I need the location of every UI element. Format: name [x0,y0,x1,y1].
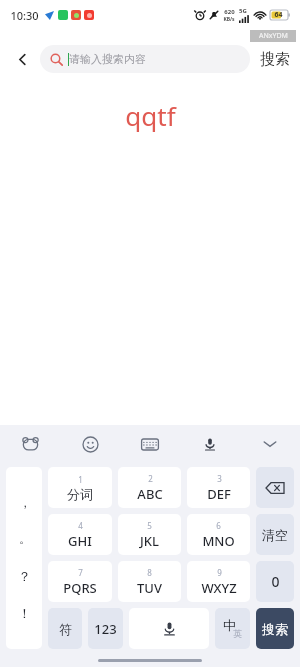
button[interactable]: 123 [88,608,123,649]
staticText: 搜索 [260,50,290,69]
button[interactable]: 搜索 [256,608,294,649]
staticText: GHI [68,532,92,550]
staticText: ANxYDM [259,31,288,41]
staticText: DEF [207,485,231,503]
button[interactable]: Voice input [129,608,209,649]
button[interactable]: Back [8,45,36,73]
staticText: ABC [137,485,163,503]
staticText: 请输入搜索内容 [69,52,146,66]
staticText: JKL [140,532,159,550]
button[interactable]: 9 [187,561,250,602]
staticText: ， [19,495,31,510]
staticText: KB/s [223,16,235,23]
button[interactable]: 2 [118,467,181,508]
button[interactable]: ， [6,467,42,649]
staticText: WXYZ [201,579,237,597]
button[interactable]: 8 [118,561,181,602]
staticText: ！ [18,605,31,621]
staticText: 清空 [262,527,288,543]
button[interactable]: 清空 [256,514,294,555]
button[interactable]: Input method [0,425,60,463]
staticText: 620 [224,8,235,16]
staticText: TUV [137,579,162,597]
staticText: MNO [202,532,235,550]
staticText: 123 [94,620,117,638]
staticText: 符 [59,621,72,637]
staticText: 搜索 [262,621,288,637]
staticText: 5 [147,520,152,531]
button[interactable]: Emoji [60,425,120,463]
staticText: 2 [148,473,153,484]
staticText: 7 [78,567,83,578]
button[interactable]: 6 [187,514,250,555]
staticText: 英 [233,628,242,639]
button[interactable]: 中 [215,608,250,649]
staticText: 0 [271,572,280,591]
button[interactable]: Keyboard layout [120,425,180,463]
button[interactable]: 3 [187,467,250,508]
staticText: 。 [19,531,31,546]
staticText: ？ [18,568,31,584]
button[interactable]: Voice input [180,425,240,463]
staticText: qqtf [125,98,176,133]
button[interactable]: 5 [118,514,181,555]
button[interactable]: 搜索 [258,50,292,69]
staticText: 9 [217,567,222,578]
button[interactable]: 请输入搜索内容 [40,45,250,73]
staticText: 8 [147,567,152,578]
staticText: 6 [216,520,221,531]
button[interactable]: 0 [256,561,294,602]
staticText: 10:30 [10,8,39,23]
staticText: 5G [239,7,247,15]
button[interactable]: 1 [48,467,112,508]
staticText: 3 [217,473,222,484]
staticText: 1 [78,474,83,485]
button[interactable]: Hide keyboard [240,425,300,463]
staticText: PQRS [63,579,97,597]
button[interactable]: Backspace [256,467,294,508]
button[interactable]: 4 [48,514,112,555]
button[interactable]: 7 [48,561,112,602]
staticText: 4 [78,520,83,531]
staticText: 中 [223,617,236,633]
staticText: 64 [274,10,283,20]
staticText: 分词 [67,486,93,502]
button[interactable]: 符 [48,608,82,649]
